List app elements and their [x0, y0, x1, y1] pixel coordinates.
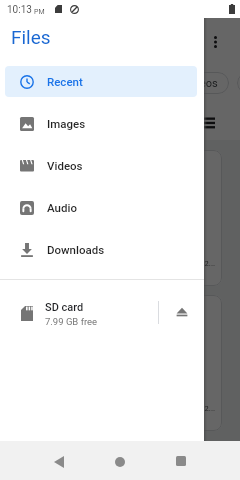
- button[interactable]: Eject: [159, 289, 204, 335]
- button[interactable]: Audio: [237, 72, 240, 94]
- staticText: Images: [47, 117, 86, 130]
- staticText: 7.99 GB free: [45, 316, 98, 327]
- staticText: Downloads: [47, 243, 105, 256]
- staticText: SD card: [45, 301, 84, 314]
- button[interactable]: Images: [5, 108, 197, 139]
- button[interactable]: Audio: [5, 192, 197, 223]
- staticText: Videos: [47, 159, 83, 172]
- staticText: Recent: [47, 75, 83, 88]
- button[interactable]: IMG_20200617_22...: [135, 295, 222, 431]
- button[interactable]: Videos: [173, 72, 229, 94]
- button[interactable]: List view: [200, 113, 218, 131]
- staticText: Videos: [184, 77, 218, 90]
- staticText: IMG_20200617_22...: [142, 404, 216, 413]
- button[interactable]: Back: [39, 442, 79, 480]
- button[interactable]: More options: [206, 30, 224, 54]
- staticText: Files: [11, 26, 51, 48]
- button[interactable]: Recent: [5, 66, 197, 97]
- button[interactable]: Downloads: [5, 234, 197, 265]
- button[interactable]: Recents: [161, 441, 201, 480]
- staticText: Audio: [47, 201, 77, 214]
- staticText: PM: [34, 8, 45, 16]
- button[interactable]: Videos: [5, 150, 197, 181]
- button[interactable]: IMG_20200617_22...: [135, 150, 222, 286]
- button[interactable]: Home: [100, 442, 140, 480]
- staticText: 10:13: [7, 4, 32, 16]
- staticText: IMG_20200617_22...: [142, 259, 216, 268]
- button[interactable]: SD card: [0, 280, 204, 344]
